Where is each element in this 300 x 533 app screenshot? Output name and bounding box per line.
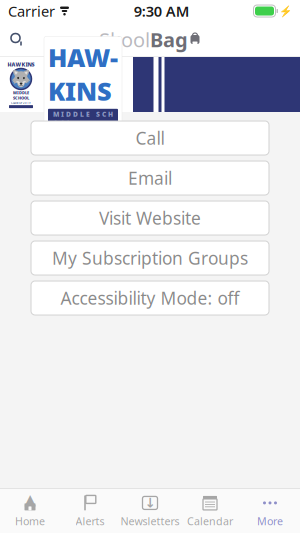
staticText: Home: [15, 514, 45, 528]
button[interactable]: Visit Website: [31, 201, 269, 235]
button[interactable]: More: [240, 489, 300, 533]
staticText: 🐺: [11, 70, 31, 88]
button[interactable]: Search: [0, 22, 34, 56]
staticText: ⚡: [279, 5, 292, 17]
staticText: HAWKINS: [48, 40, 118, 108]
button[interactable]: Call: [31, 121, 269, 155]
staticText: HAWKINS: [7, 61, 34, 68]
staticText: Visit Website: [99, 206, 201, 229]
staticText: ↓: [144, 495, 155, 510]
button[interactable]: ↓: [120, 489, 180, 533]
staticText: Skool: [99, 26, 150, 53]
button[interactable]: Accessibility Mode: off: [31, 281, 269, 315]
staticText: M I D D L E S C H O O L: [53, 110, 113, 127]
staticText: ▲: [24, 491, 35, 508]
staticText: Calendar: [187, 514, 233, 528]
staticText: Accessibility Mode: off: [60, 286, 239, 309]
staticText: Newsletters: [120, 514, 179, 528]
staticText: My Subscription Groups: [52, 246, 248, 269]
staticText: Bag: [150, 26, 188, 53]
staticText: HAWKINS: [48, 40, 118, 108]
staticText: More: [257, 514, 283, 528]
staticText: CLASS OF 2019: [11, 101, 31, 105]
staticText: Email: [128, 166, 172, 189]
button[interactable]: Email: [31, 161, 269, 195]
button[interactable]: Alerts: [60, 489, 120, 533]
staticText: Call: [135, 126, 164, 149]
staticText: Alerts: [75, 514, 104, 528]
button[interactable]: ▲: [0, 489, 60, 533]
staticText: MIDDLE SCHOOL: [13, 90, 29, 101]
button[interactable]: My Subscription Groups: [31, 241, 269, 275]
button[interactable]: Calendar: [180, 489, 240, 533]
staticText: 9:30 AM: [134, 1, 190, 21]
staticText: Carrier: [8, 1, 55, 21]
